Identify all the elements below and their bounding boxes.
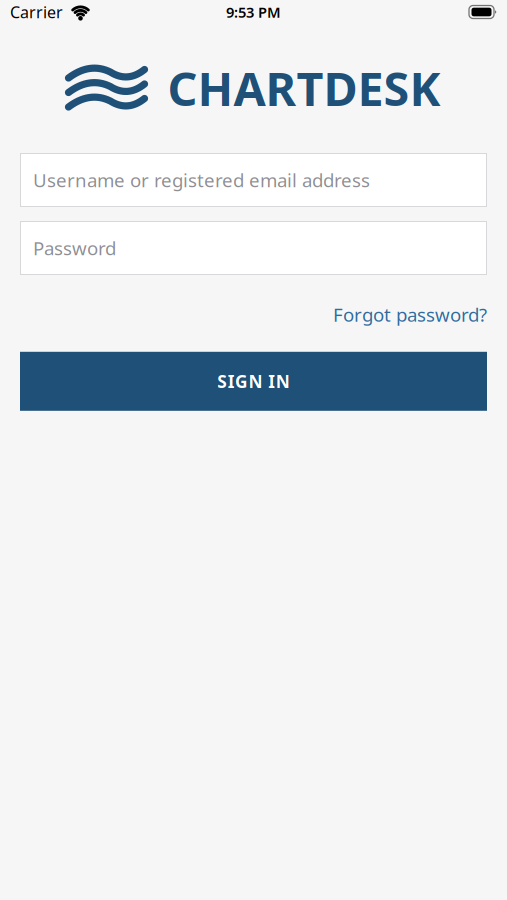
staticText: I [228,370,235,393]
staticText: S [217,370,227,393]
staticText: CHARTDESK [167,57,440,119]
staticText: Username or registered email address [33,168,370,192]
staticText: I [268,370,275,393]
button[interactable]: Forgot password? [333,302,487,327]
staticText: Carrier [10,1,63,23]
button[interactable]: Username or registered email address [0,153,507,207]
staticText: Password [33,236,116,260]
staticText: N [248,370,262,393]
button[interactable]: Password [0,221,507,275]
staticText: 9:53 PM [226,2,281,22]
staticText: Forgot password? [333,302,487,327]
staticText: N [276,370,290,393]
staticText: G [235,370,248,393]
button[interactable]: S [0,352,507,411]
